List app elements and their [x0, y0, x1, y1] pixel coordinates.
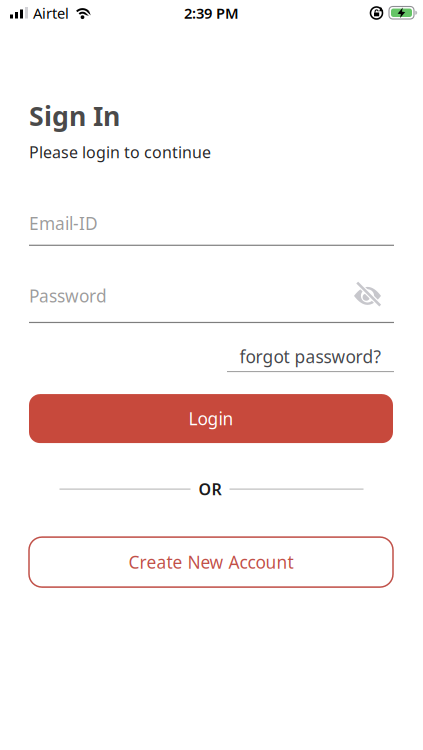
staticText: Create New Account — [128, 551, 293, 574]
staticText: Airtel — [33, 3, 69, 23]
staticText: Password — [29, 284, 107, 307]
button[interactable]: forgot password? — [227, 345, 394, 372]
button[interactable]: Login — [29, 394, 393, 443]
button[interactable]: Create New Account — [29, 537, 393, 587]
button[interactable]: Show password — [353, 283, 382, 308]
staticText: Please login to continue — [29, 141, 211, 163]
staticText: Login — [188, 407, 233, 430]
staticText: forgot password? — [239, 345, 381, 368]
staticText: OR — [198, 478, 221, 500]
staticText: Sign In — [29, 98, 120, 133]
staticText: 2:39 PM — [184, 3, 239, 23]
staticText: Email-ID — [29, 212, 98, 235]
